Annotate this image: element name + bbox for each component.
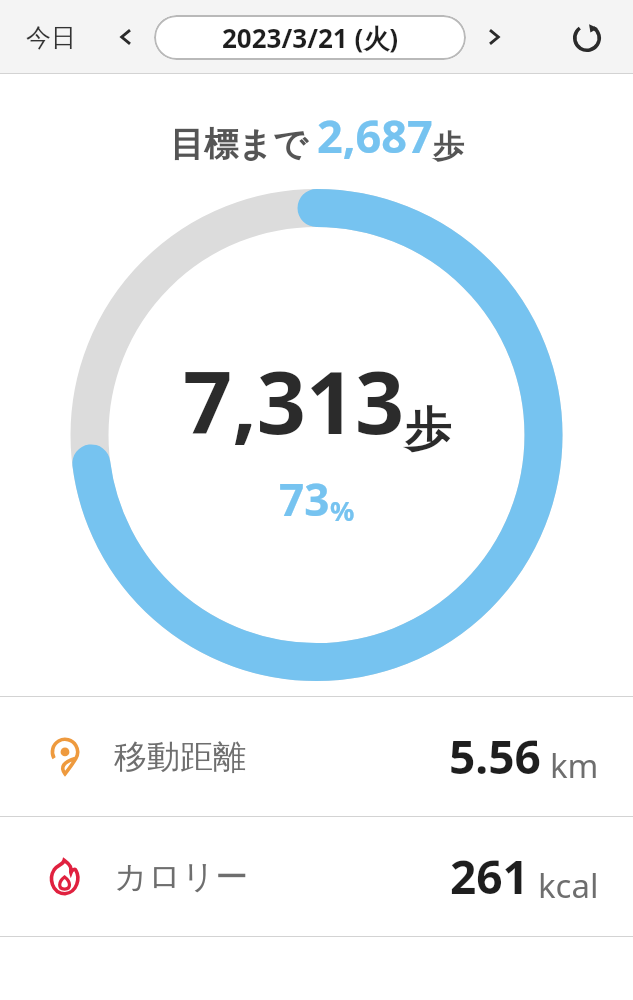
staticText: 今日 [26,22,76,53]
staticText: 歩 [433,127,464,166]
staticText: 5.56 [449,725,541,788]
staticText: 移動距離 [114,736,246,778]
other: Distance [44,736,86,778]
staticText: 目標まで [170,123,308,166]
staticText: 歩 [405,401,451,459]
button[interactable]: Calories [0,817,633,936]
staticText: カロリー [114,856,249,898]
other: Calories [44,856,86,898]
button[interactable]: Refresh [563,13,611,61]
staticText: 261 [450,845,529,908]
button[interactable]: Previous day [104,15,148,59]
staticText: 2023/3/21 (火) [222,20,399,56]
staticText: 7,313 [183,342,405,459]
button[interactable]: 今日 [18,16,84,59]
button[interactable]: 2023/3/21 (火) [154,15,466,60]
staticText: % [330,492,355,529]
staticText: 73 [279,469,330,529]
button[interactable]: Distance [0,697,633,816]
button[interactable]: Next day [472,15,516,59]
staticText: km [550,743,599,788]
staticText: kcal [538,863,599,908]
staticText: 2,687 [317,105,433,166]
